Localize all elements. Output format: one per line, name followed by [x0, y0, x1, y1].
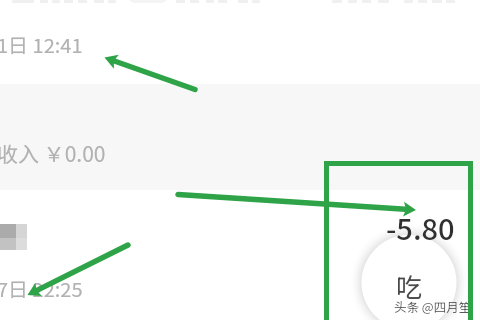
staticText: -5.80: [386, 206, 455, 248]
staticText: 7日 22:25: [0, 274, 83, 303]
button[interactable]: Food category: [350, 223, 468, 320]
staticText: 头条 @四月笙: [394, 297, 472, 315]
staticText: 吃: [396, 267, 423, 305]
staticText: 1日 12:41: [0, 30, 83, 59]
staticText: 收入 ￥0.00: [0, 138, 106, 168]
